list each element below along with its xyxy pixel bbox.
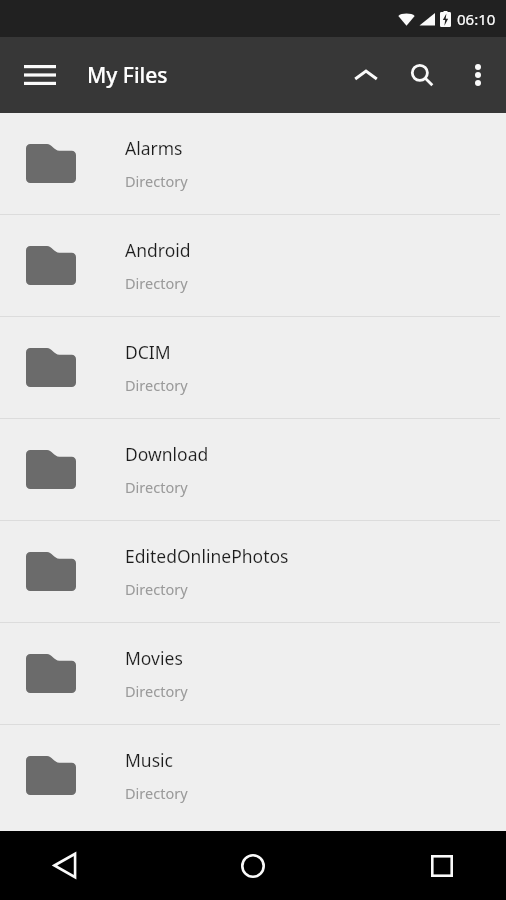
staticText: Directory (125, 579, 188, 599)
staticText: Android (125, 238, 191, 262)
staticText: EditedOnlinePhotos (125, 544, 289, 568)
button[interactable]: More options (450, 47, 506, 103)
button[interactable]: Go up (338, 47, 394, 103)
staticText: Directory (125, 273, 188, 293)
button[interactable]: Open navigation drawer (10, 45, 70, 105)
button[interactable]: Download (0, 419, 506, 520)
staticText: Directory (125, 681, 188, 701)
button[interactable]: Android (0, 215, 506, 316)
staticText: Download (125, 442, 209, 466)
staticText: 06:10 (457, 9, 496, 29)
staticText: Alarms (125, 136, 183, 160)
button[interactable]: Search (394, 47, 450, 103)
button[interactable]: Back (0, 831, 168, 900)
button[interactable]: Recent apps (337, 831, 506, 900)
staticText: Music (125, 748, 173, 772)
staticText: DCIM (125, 340, 171, 364)
staticText: Directory (125, 375, 188, 395)
staticText: Directory (125, 477, 188, 497)
staticText: My Files (87, 61, 168, 90)
staticText: Directory (125, 171, 188, 191)
staticText: Directory (125, 783, 188, 803)
button[interactable]: DCIM (0, 317, 506, 418)
button[interactable]: EditedOnlinePhotos (0, 521, 506, 622)
staticText: Movies (125, 646, 183, 670)
button[interactable]: Music (0, 725, 506, 826)
button[interactable]: Movies (0, 623, 506, 724)
button[interactable]: Home (168, 831, 337, 900)
button[interactable]: Alarms (0, 113, 506, 214)
